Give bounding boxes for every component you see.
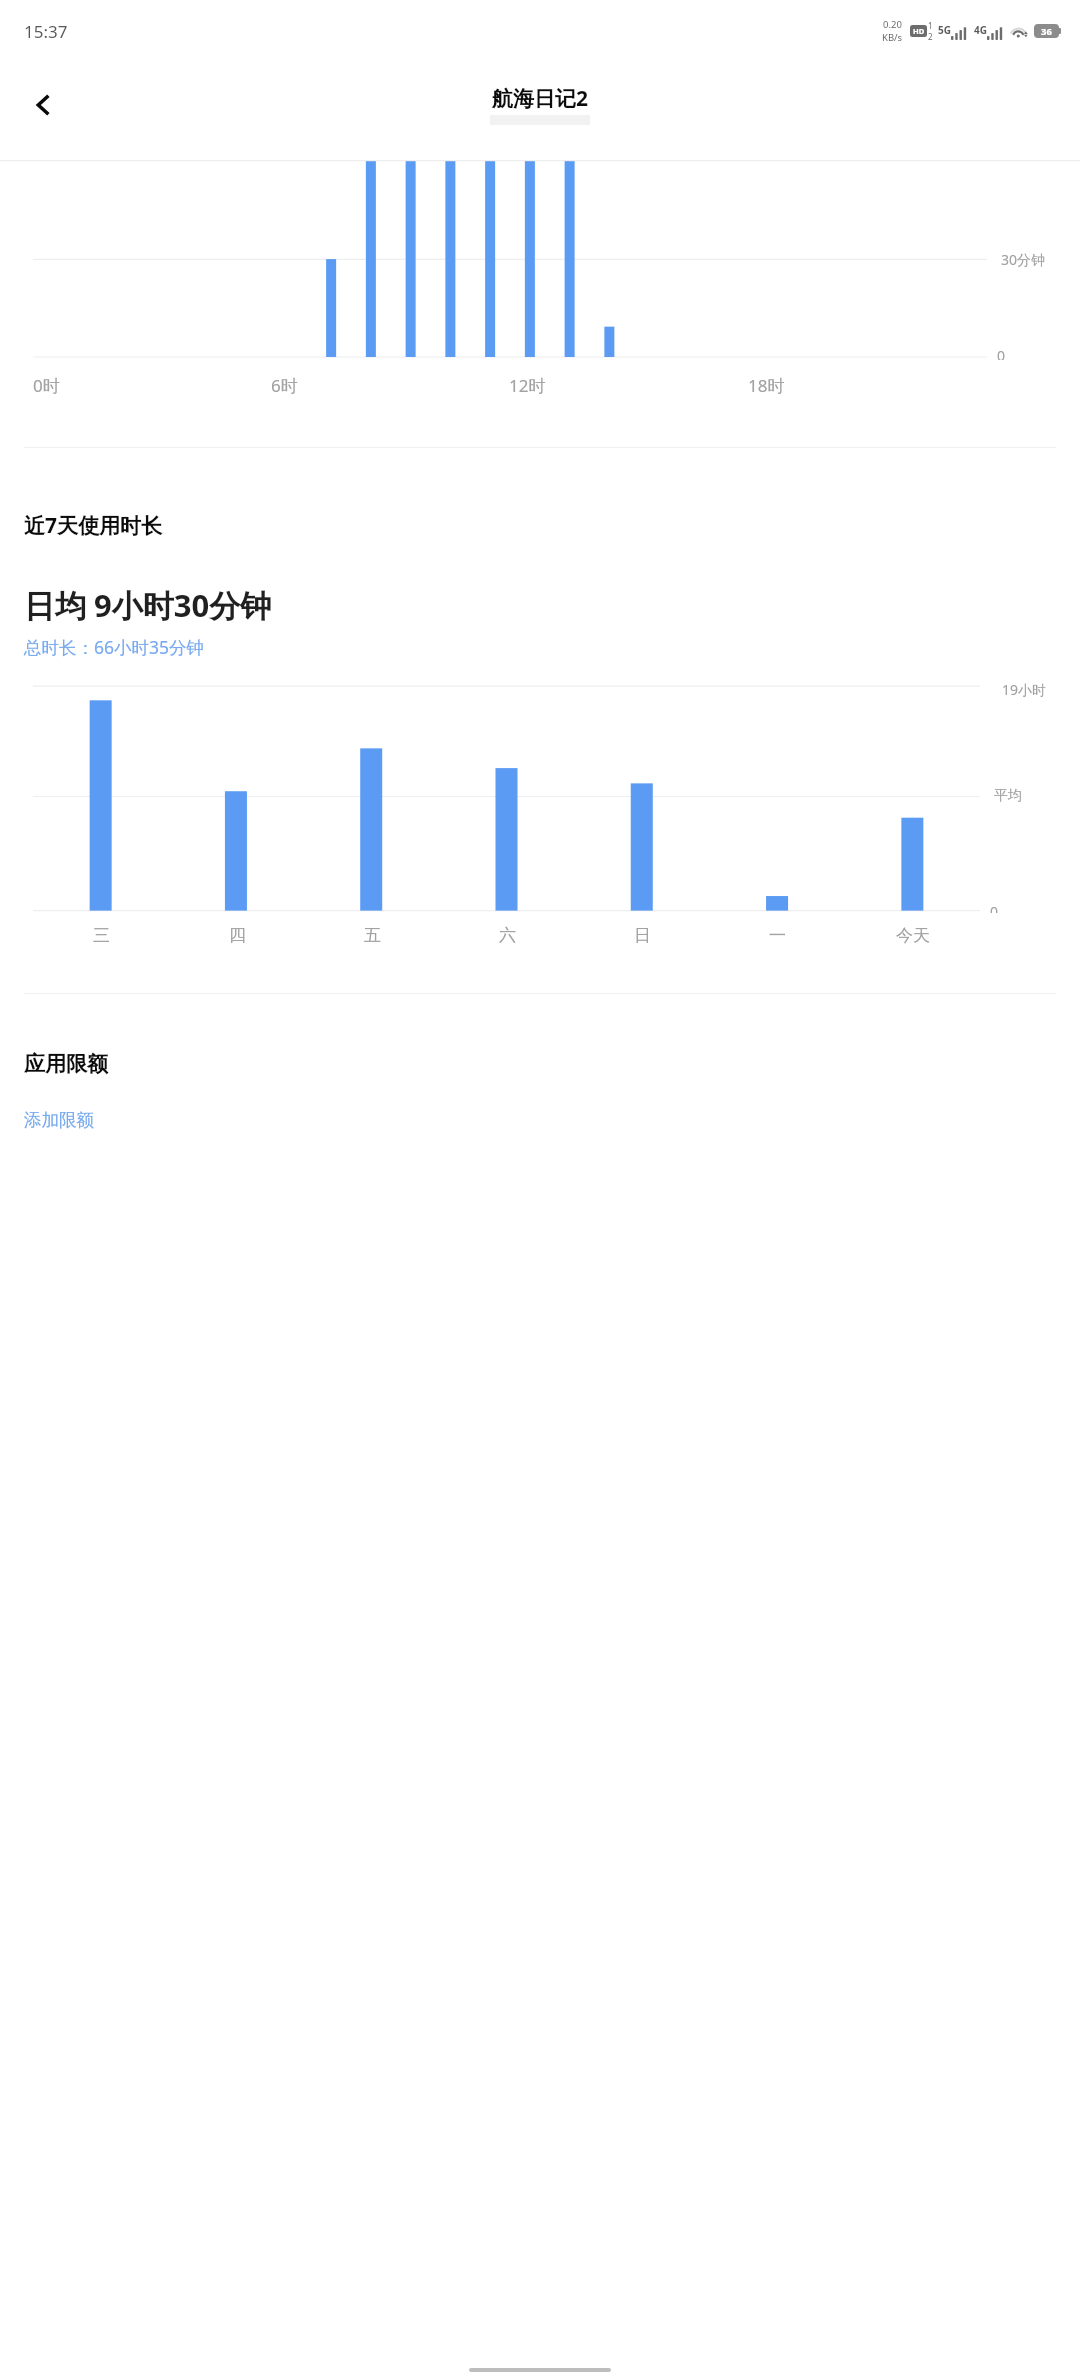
staticText: 19小时 [1002,680,1047,699]
staticText: 15:37 [24,20,68,43]
staticText: 4G [974,23,987,37]
staticText: 30分钟 [1001,250,1046,269]
staticText: HD [913,26,925,36]
staticText: 日均 9小时30分钟 [24,584,272,626]
staticText: 0.20 [883,18,902,31]
staticText: 航海日记2 [492,84,589,113]
staticText: KB/s [882,31,903,44]
staticText: 添加限额 [24,1109,94,1131]
staticText: 五 [364,925,381,946]
staticText: 0 [997,346,1006,360]
staticText: 1 [928,20,933,31]
staticText: 0时 [33,374,60,397]
staticText: 四 [229,925,246,946]
staticText: 今天 [896,925,930,946]
staticText: 12时 [509,374,546,397]
staticText: 6时 [271,374,298,397]
button[interactable]: Back [14,75,74,135]
button[interactable]: 添加限额 [0,1104,1080,1136]
staticText: 平均 [994,787,1022,805]
staticText: 总时长：66小时35分钟 [24,635,205,659]
staticText: 六 [499,925,516,946]
staticText: 日 [634,925,651,946]
staticText: 2 [928,31,933,42]
staticText: 5G [938,23,951,37]
staticText: 应用限额 [24,1051,108,1077]
staticText: 一 [769,925,786,946]
staticText: 三 [93,925,110,946]
staticText: 0 [990,902,999,913]
staticText: 18时 [748,374,785,397]
staticText: 近7天使用时长 [24,511,163,540]
staticText: 36 [1041,25,1052,38]
